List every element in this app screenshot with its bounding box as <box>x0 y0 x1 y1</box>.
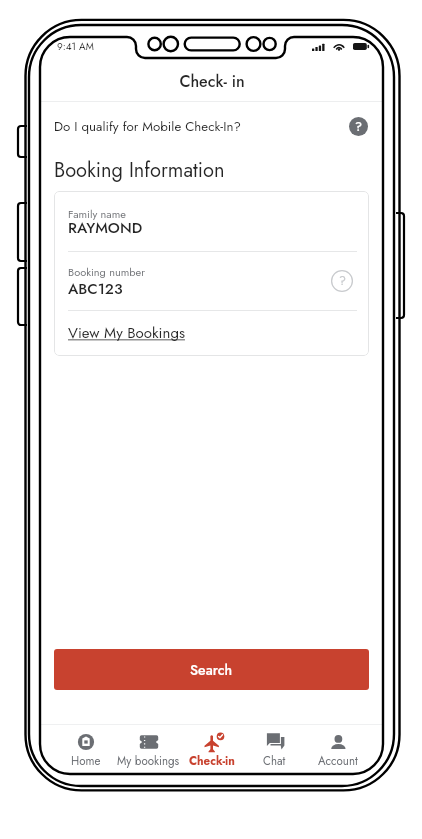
button[interactable]: My bookings <box>117 726 180 772</box>
staticText: 9:41 AM <box>57 39 94 53</box>
staticText: Check-in <box>189 753 235 770</box>
button[interactable]: Account <box>306 726 369 772</box>
staticText: Do I qualify for Mobile Check-In? <box>54 117 241 136</box>
button[interactable]: Help <box>349 117 368 136</box>
staticText: Family name <box>68 206 126 222</box>
staticText: Booking Information <box>54 156 225 185</box>
staticText: Home <box>71 753 101 770</box>
staticText: View My Bookings <box>68 322 185 344</box>
button[interactable]: Home <box>54 726 117 772</box>
staticText: RAYMOND <box>68 217 143 239</box>
staticText: ABC123 <box>68 278 123 300</box>
staticText: Booking number <box>68 264 146 280</box>
button[interactable]: Do I qualify for Mobile Check-In? <box>54 115 344 137</box>
staticText: ? <box>339 272 346 290</box>
button[interactable]: Chat <box>243 726 306 772</box>
button[interactable]: View My Bookings <box>68 322 185 344</box>
button[interactable]: Search <box>54 649 369 690</box>
staticText: Chat <box>263 753 286 770</box>
staticText: My bookings <box>117 753 180 770</box>
staticText: Search <box>190 660 233 680</box>
button[interactable]: Check-in <box>180 726 243 772</box>
staticText: Account <box>318 753 358 770</box>
staticText: Check- in <box>179 70 245 93</box>
staticText: ? <box>355 118 363 135</box>
button[interactable]: Booking number help <box>331 270 353 292</box>
